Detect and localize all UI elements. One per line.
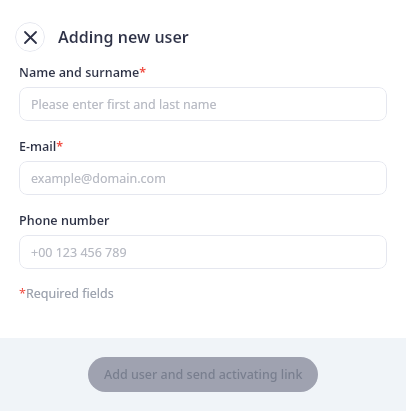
button[interactable]: Close <box>15 22 45 52</box>
button[interactable]: Add user and send activating link <box>88 357 318 392</box>
staticText: E-mail* <box>19 138 64 155</box>
staticText: Add user and send activating link <box>104 366 303 383</box>
staticText: Adding new user <box>58 26 189 48</box>
staticText: Name and surname* <box>19 64 147 81</box>
button[interactable]: example@domain.com <box>19 161 387 195</box>
button[interactable]: Please enter first and last name <box>19 87 387 121</box>
staticText: Phone number <box>19 212 110 229</box>
button[interactable]: +00 123 456 789 <box>19 235 387 269</box>
staticText: +00 123 456 789 <box>31 244 127 261</box>
staticText: *Required fields <box>19 285 114 302</box>
staticText: example@domain.com <box>31 170 166 187</box>
staticText: Please enter first and last name <box>31 96 217 113</box>
